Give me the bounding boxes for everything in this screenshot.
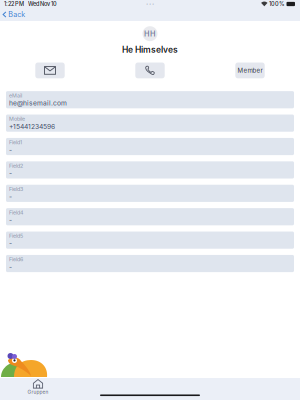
button[interactable]: eMail: [6, 91, 294, 108]
button[interactable]: Field5: [6, 231, 294, 249]
button[interactable]: Gruppen: [14, 378, 62, 394]
staticText: Back: [8, 10, 25, 19]
button[interactable]: Member: [235, 62, 265, 78]
staticText: -: [9, 216, 12, 224]
staticText: +15441234596: [9, 122, 55, 131]
staticText: Field3: [9, 186, 23, 192]
button[interactable]: Mobile: [6, 114, 294, 132]
staticText: HH: [144, 29, 156, 38]
staticText: Field4: [9, 209, 23, 216]
button[interactable]: Call: [135, 62, 165, 78]
button[interactable]: Field4: [6, 208, 294, 225]
staticText: he@hisemail.com: [9, 99, 67, 107]
staticText: -: [9, 193, 12, 201]
button[interactable]: Field2: [6, 161, 294, 178]
staticText: • • •: [146, 2, 154, 6]
button[interactable]: Field6: [6, 255, 294, 272]
staticText: Mobile: [9, 116, 25, 122]
staticText: Field5: [9, 233, 23, 239]
staticText: -: [9, 169, 12, 177]
staticText: -: [9, 263, 12, 271]
button[interactable]: Field1: [6, 138, 294, 155]
staticText: Field6: [9, 256, 23, 263]
staticText: Field2: [9, 162, 23, 169]
button[interactable]: Back: [0, 8, 28, 21]
staticText: He Himselves: [122, 44, 178, 55]
staticText: Field1: [9, 139, 22, 146]
staticText: 1:22 PM: [4, 1, 24, 7]
staticText: -: [9, 146, 12, 154]
button[interactable]: Mail: [35, 62, 65, 78]
staticText: Gruppen: [27, 389, 48, 395]
staticText: -: [9, 239, 12, 248]
staticText: Wed Nov 10: [28, 1, 57, 7]
staticText: Member: [237, 67, 262, 74]
button[interactable]: Field3: [6, 185, 294, 202]
staticText: eMail: [9, 92, 22, 99]
staticText: 100%: [269, 1, 285, 7]
